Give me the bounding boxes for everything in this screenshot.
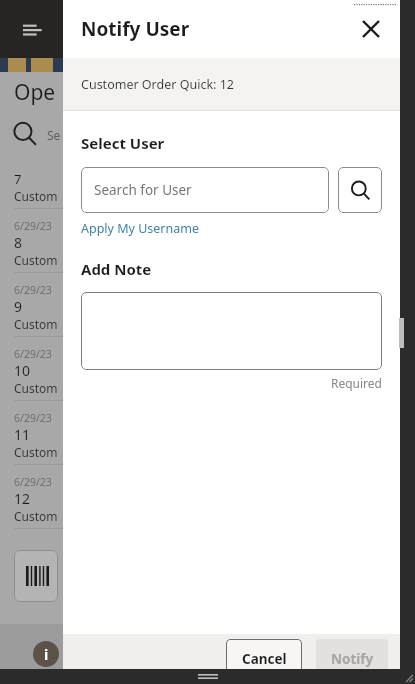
staticText: Select User (81, 133, 165, 153)
staticText: Customer Order Quick: 12 (81, 76, 234, 93)
button[interactable]: 6/29/23 (0, 214, 63, 278)
button[interactable]: 6/29/23 (0, 342, 63, 406)
staticText: 10 (14, 361, 31, 380)
staticText: 6/29/23 (14, 347, 52, 361)
button[interactable]: 7 (0, 165, 63, 214)
staticText: 6/29/23 (14, 219, 52, 233)
staticText: Open (14, 78, 63, 107)
button[interactable]: Info (33, 641, 59, 667)
staticText: 9 (14, 297, 23, 316)
staticText: i (44, 645, 49, 664)
staticText: 12 (14, 489, 31, 508)
staticText: 6/29/23 (14, 411, 52, 425)
button[interactable]: Close (350, 8, 392, 50)
button[interactable]: Search (338, 167, 382, 213)
staticText: 8 (14, 233, 23, 252)
button[interactable]: Notify (316, 639, 388, 678)
staticText: Notify User (81, 16, 190, 42)
button[interactable]: Apply My Username (81, 220, 199, 237)
staticText: Custom (14, 252, 58, 268)
staticText: 6/29/23 (14, 283, 52, 297)
staticText: 11 (14, 425, 31, 444)
staticText: Se (47, 127, 61, 143)
button[interactable]: Menu (0, 0, 63, 58)
staticText: Search for User (94, 181, 192, 199)
button[interactable]: Search for User (81, 167, 329, 213)
button[interactable]: 6/29/23 (0, 278, 63, 342)
button[interactable]: 6/29/23 (0, 406, 63, 470)
staticText: Custom (14, 508, 58, 524)
staticText: Custom (14, 444, 58, 460)
staticText: Apply My Username (81, 220, 199, 237)
staticText: Custom (14, 188, 58, 204)
staticText: Custom (14, 316, 58, 332)
button[interactable]: Cancel (226, 639, 302, 678)
staticText: Add Note (81, 259, 152, 279)
button[interactable]: 6/29/23 (0, 470, 63, 534)
staticText: Cancel (242, 650, 287, 668)
button[interactable] (81, 292, 382, 370)
staticText: Custom (14, 380, 58, 396)
staticText: 7 (14, 170, 22, 188)
staticText: 6/29/23 (14, 475, 52, 489)
staticText: Required (331, 375, 382, 391)
staticText: Notify (331, 650, 374, 668)
button[interactable]: Scan barcode (14, 550, 58, 602)
